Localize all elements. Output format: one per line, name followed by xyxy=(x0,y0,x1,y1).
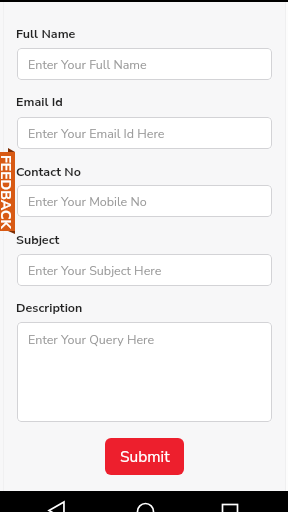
staticText: Enter Your Email Id Here xyxy=(28,125,165,142)
staticText: Enter Your Subject Here xyxy=(28,262,162,279)
staticText: Subject xyxy=(16,231,60,248)
staticText: Contact No xyxy=(16,163,81,180)
staticText: FEEDBACK xyxy=(0,155,15,229)
button[interactable]: Back xyxy=(33,491,81,512)
button[interactable]: Enter Your Query Here xyxy=(17,322,272,422)
staticText: Full Name xyxy=(16,25,76,42)
staticText: Description xyxy=(16,299,83,316)
staticText: Submit xyxy=(120,446,170,467)
button[interactable]: Enter Your Full Name xyxy=(17,48,272,80)
staticText: Enter Your Full Name xyxy=(28,56,147,73)
button[interactable]: Submit xyxy=(105,438,184,475)
button[interactable]: Enter Your Subject Here xyxy=(17,254,272,286)
button[interactable]: Enter Your Mobile No xyxy=(17,185,272,217)
button[interactable]: Recent apps xyxy=(206,491,254,512)
staticText: Email Id xyxy=(16,93,63,110)
button[interactable]: Home xyxy=(121,491,169,512)
staticText: Enter Your Query Here xyxy=(28,331,155,348)
button[interactable]: Enter Your Email Id Here xyxy=(17,117,272,149)
button[interactable]: Feedback xyxy=(0,152,15,231)
staticText: Enter Your Mobile No xyxy=(28,193,147,210)
